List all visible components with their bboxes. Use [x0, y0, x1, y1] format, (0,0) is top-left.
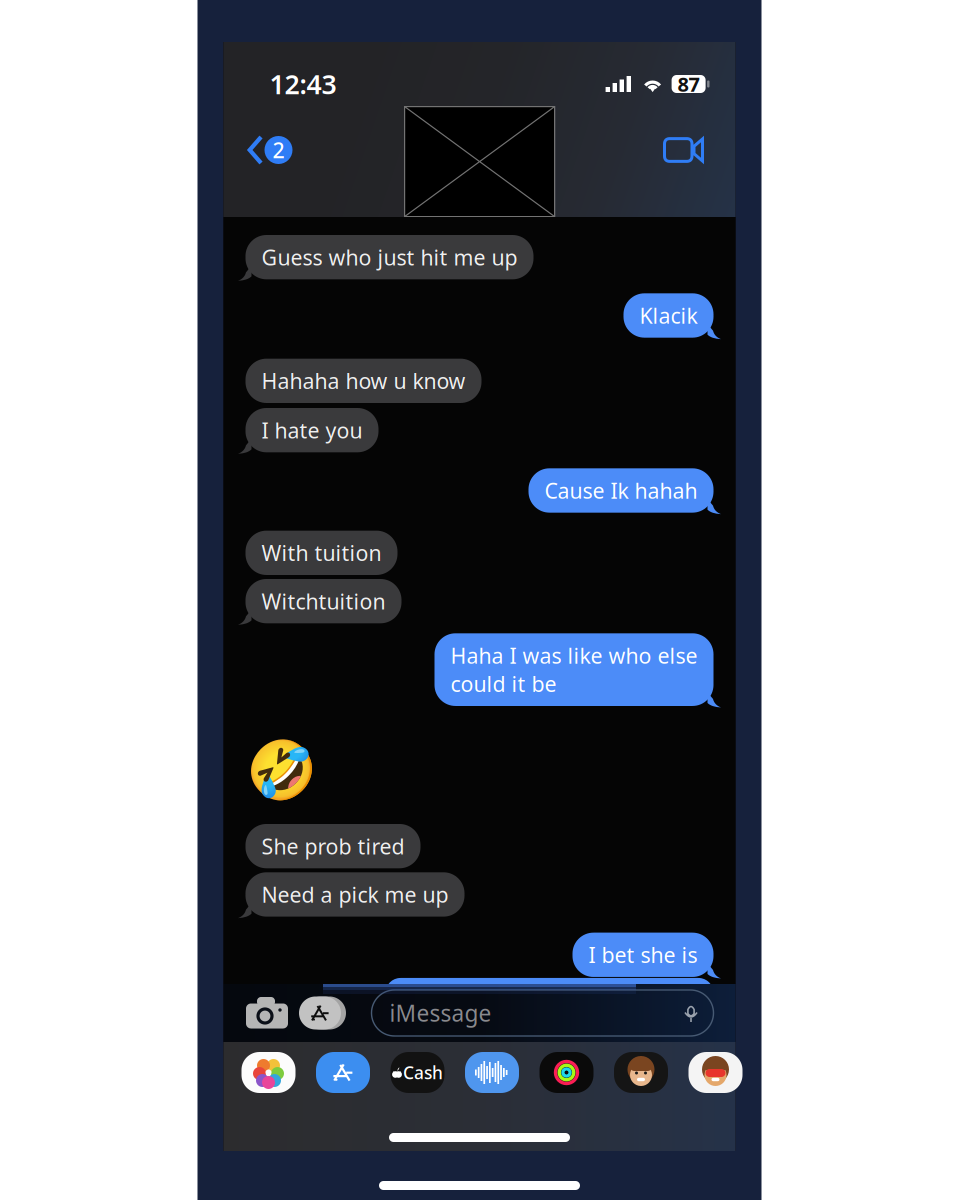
staticText: Witchtuition [261, 587, 385, 615]
button[interactable]: Need a pick me up [245, 868, 713, 917]
button[interactable]: Haha I was like who else could it be [245, 623, 713, 706]
staticText: 12:43 [269, 66, 336, 102]
button[interactable]: Apple Cash [390, 1052, 444, 1093]
staticText: Klacik [639, 301, 697, 330]
staticText: Hahaha how u know [261, 367, 465, 395]
staticText: 🤣 [245, 737, 316, 803]
button[interactable]: I hate you [245, 403, 713, 452]
button[interactable]: Fitness [539, 1052, 593, 1093]
staticText: Cash [403, 1061, 443, 1084]
staticText: Cause Ik hahah [544, 476, 697, 505]
staticText: 87 [678, 71, 700, 97]
button[interactable]: FaceTime [650, 127, 735, 173]
staticText: 2 [272, 136, 284, 164]
staticText: Need a pick me up [261, 880, 448, 909]
button[interactable]: With tuition [245, 513, 713, 575]
staticText: Guess who just hit me up [261, 243, 517, 271]
button[interactable]: Apps [296, 996, 343, 1029]
button[interactable]: Camera [245, 996, 288, 1029]
button[interactable]: Witchtuition [245, 575, 713, 623]
staticText: I hate you [261, 416, 362, 444]
button[interactable]: Klacik [245, 279, 713, 338]
staticText: Haha I was like who else could it be [450, 641, 697, 698]
button[interactable]: Voice memo [465, 1052, 519, 1093]
staticText: With tuition [261, 539, 381, 567]
button[interactable]: Memoji [614, 1052, 668, 1093]
button[interactable]: Cause Ik hahah [245, 452, 713, 513]
button[interactable]: Hahaha how u know [245, 338, 713, 403]
staticText: She prob tired [261, 832, 404, 860]
button[interactable]: I bet she is [245, 917, 713, 977]
button[interactable]: She prob tired [245, 801, 713, 868]
staticText: I bet she is [588, 941, 697, 969]
button[interactable]: Guess who just hit me up [245, 217, 713, 279]
button[interactable]: iMessage [371, 990, 713, 1036]
staticText: iMessage [389, 998, 491, 1028]
button[interactable]: Memoji sticker [688, 1052, 742, 1093]
button[interactable]: Photos [241, 1052, 295, 1093]
button[interactable]: Back [223, 123, 304, 177]
button[interactable]: App Store [316, 1052, 370, 1093]
